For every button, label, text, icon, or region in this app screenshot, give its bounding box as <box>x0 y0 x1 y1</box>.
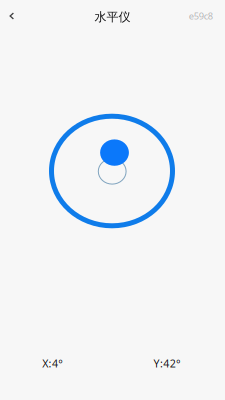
staticText: Y:42° <box>154 356 181 371</box>
button[interactable]: Back <box>0 3 25 29</box>
staticText: 水平仪 <box>94 10 130 24</box>
staticText: e59c8 <box>189 10 213 22</box>
staticText: X:4° <box>42 356 63 371</box>
button[interactable]: e59c8 <box>173 3 213 29</box>
